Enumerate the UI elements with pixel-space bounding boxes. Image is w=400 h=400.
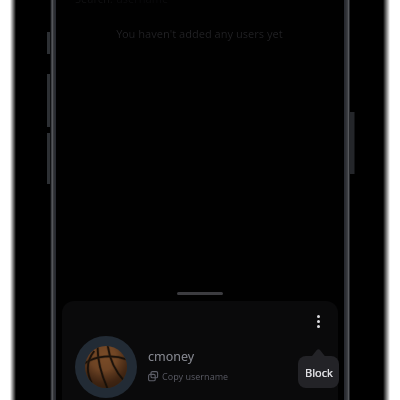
button[interactable]: Copy username [148, 369, 229, 383]
button[interactable]: Search: [75, 0, 169, 5]
staticText: Copy username [162, 370, 229, 382]
staticText: Search: [75, 0, 116, 5]
staticText: Block [305, 365, 333, 380]
button[interactable]: More options [309, 312, 327, 330]
staticText: username [116, 0, 169, 5]
staticText: You haven't added any users yet [56, 26, 343, 41]
staticText: cmoney [148, 348, 195, 365]
button[interactable]: Profile picture [75, 336, 137, 398]
button[interactable]: Block [298, 356, 339, 388]
